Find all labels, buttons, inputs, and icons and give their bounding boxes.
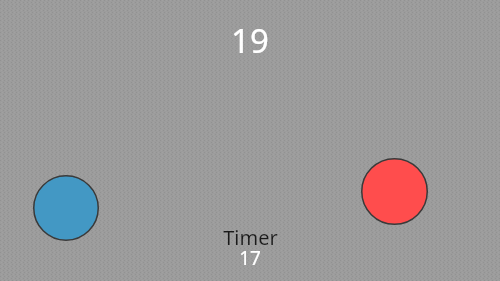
button[interactable]: Red target bbox=[361, 158, 428, 225]
button[interactable]: Blue target bbox=[33, 175, 99, 241]
staticText: Timer bbox=[223, 224, 278, 251]
staticText: 17 bbox=[239, 245, 261, 271]
staticText: 19 bbox=[231, 18, 269, 63]
